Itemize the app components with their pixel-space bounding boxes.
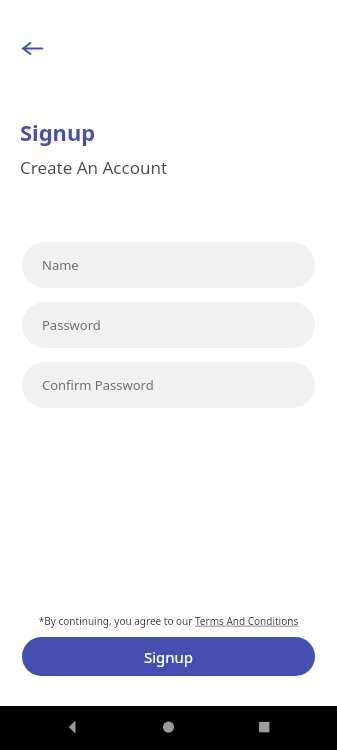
staticText: Name [42, 256, 79, 274]
staticText: Signup [144, 647, 194, 667]
staticText: Create An Account [20, 156, 168, 179]
staticText: Password [42, 316, 101, 334]
button[interactable]: Password [22, 302, 315, 348]
button[interactable]: Signup [22, 637, 315, 676]
staticText: Signup [20, 117, 96, 147]
button[interactable]: Confirm Password [22, 362, 315, 408]
button[interactable]: Name [22, 242, 315, 288]
staticText: Confirm Password [42, 376, 154, 394]
button[interactable]: Back [14, 30, 50, 66]
button[interactable]: *By continuing, you agree to our Terms A… [0, 614, 337, 628]
